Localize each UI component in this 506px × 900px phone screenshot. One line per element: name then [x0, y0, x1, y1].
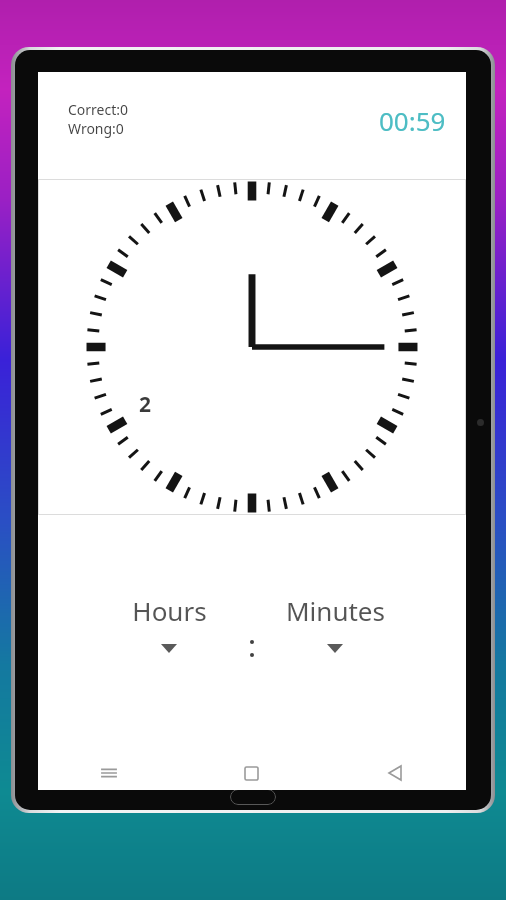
staticText: Minutes — [286, 593, 385, 628]
staticText: 2 — [139, 390, 152, 419]
staticText: Wrong:0 — [68, 119, 124, 138]
other: Minutes dropdown — [327, 644, 343, 653]
button[interactable]: Minutes — [260, 593, 410, 653]
button[interactable]: Home — [180, 756, 323, 790]
staticText: Correct:0 — [68, 100, 129, 119]
button[interactable]: Correct:0 — [68, 100, 129, 138]
button[interactable]: Hours — [94, 593, 244, 653]
staticText: Hours — [132, 593, 207, 628]
button[interactable]: Back — [323, 756, 466, 790]
button[interactable]: Menu — [38, 756, 180, 790]
staticText: 00:59 — [379, 103, 446, 138]
other: Hours dropdown — [161, 644, 177, 653]
button[interactable]: 2 — [38, 179, 466, 515]
